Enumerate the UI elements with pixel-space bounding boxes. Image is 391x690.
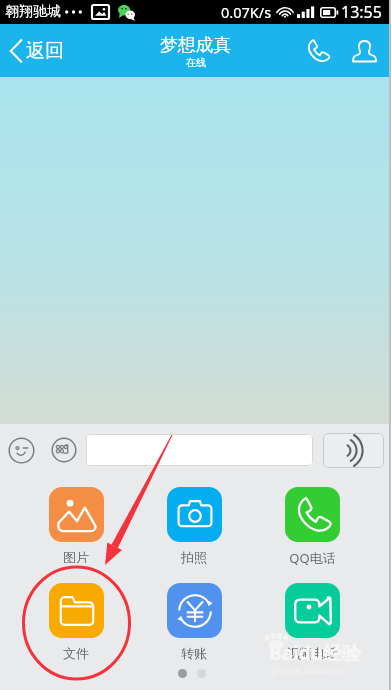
- button[interactable]: 视频电话: [253, 583, 371, 661]
- staticText: 13:55: [341, 1, 382, 23]
- button[interactable]: Call: [298, 31, 338, 71]
- staticText: 返回: [26, 39, 64, 63]
- button[interactable]: Emoji: [8, 437, 35, 464]
- button[interactable]: 文件: [17, 583, 135, 661]
- button[interactable]: 转账: [135, 583, 253, 661]
- button[interactable]: 图片: [17, 487, 135, 565]
- button[interactable]: 返回: [0, 31, 74, 71]
- staticText: 0.07K/s: [221, 2, 272, 22]
- staticText: 梦想成真: [160, 34, 232, 56]
- staticText: 图片: [63, 549, 89, 565]
- button[interactable]: 拍照: [135, 487, 253, 565]
- button[interactable]: Message input: [86, 434, 313, 466]
- button[interactable]: Voice message: [323, 433, 384, 468]
- staticText: 在线: [186, 56, 206, 69]
- staticText: 转账: [181, 645, 207, 661]
- staticText: QQ电话: [289, 549, 336, 567]
- staticText: 翱翔驰城: [5, 3, 61, 21]
- button[interactable]: Keyboard: [51, 437, 77, 463]
- staticText: 文件: [63, 645, 89, 661]
- staticText: 拍照: [181, 549, 207, 565]
- button[interactable]: QQ电话: [253, 487, 371, 567]
- button[interactable]: Contact profile: [345, 32, 384, 71]
- staticText: Baidu经验: [269, 640, 362, 666]
- staticText: 视频电话: [286, 645, 338, 661]
